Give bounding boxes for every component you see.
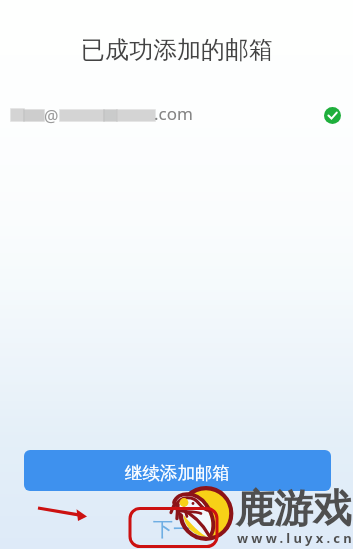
staticText: .com <box>154 102 193 125</box>
button[interactable]: 继续添加邮箱 <box>24 450 331 491</box>
staticText: 继续添加邮箱 <box>125 462 230 484</box>
staticText: 鹿游戏 <box>235 484 352 533</box>
staticText: 已成功添加的邮箱 <box>81 35 273 65</box>
staticText: @ <box>44 105 59 127</box>
other: Verified <box>324 107 341 124</box>
button[interactable]: @ <box>0 101 353 129</box>
staticText: www.luyx.cn <box>237 529 353 547</box>
button[interactable]: 下一步 <box>130 509 217 547</box>
staticText: 下一步 <box>153 517 213 542</box>
